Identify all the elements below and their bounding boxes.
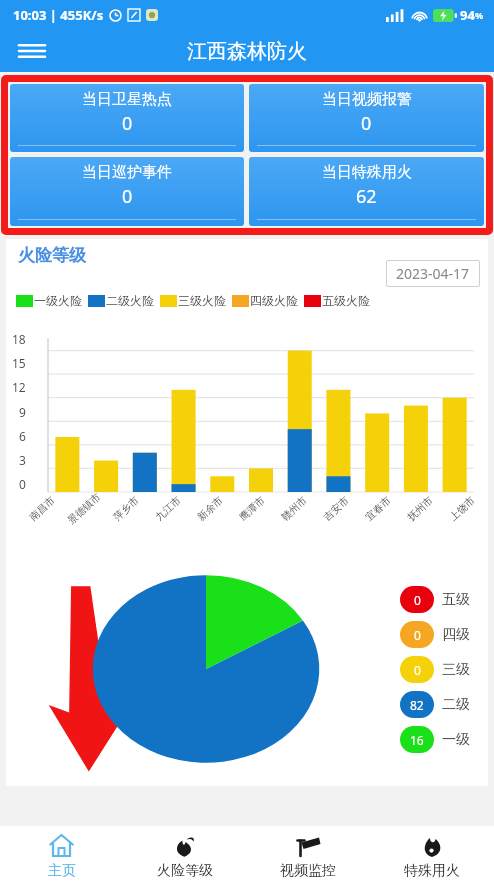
staticText: 0	[414, 662, 421, 678]
staticText: 0	[122, 111, 133, 136]
staticText: 18	[12, 331, 26, 347]
staticText: 0	[414, 592, 421, 608]
other: 火险等级	[172, 833, 197, 858]
staticText: 特殊用火	[404, 862, 460, 880]
staticText: 抚州市	[404, 494, 435, 523]
staticText: 15	[12, 355, 26, 371]
staticText: 0	[19, 476, 26, 492]
staticText: 一级	[442, 731, 470, 749]
staticText: 火险等级	[18, 245, 86, 266]
button[interactable]: 16	[400, 726, 470, 753]
button[interactable]: 当日视频报警	[249, 84, 484, 152]
staticText: 6	[19, 428, 26, 444]
staticText: 当日视频报警	[322, 90, 412, 109]
button[interactable]: 主页	[0, 826, 123, 884]
staticText: 10:03 | 455K/s	[13, 6, 104, 24]
button[interactable]: 当日特殊用火	[249, 157, 484, 226]
staticText: 二级火险	[106, 293, 154, 308]
button[interactable]: 视频监控	[246, 826, 370, 884]
staticText: 2023-04-17	[396, 264, 470, 283]
staticText: 16	[410, 732, 424, 748]
staticText: 景德镇市	[65, 490, 103, 527]
button[interactable]: Menu	[12, 31, 52, 71]
other: 特殊用火	[420, 833, 445, 858]
staticText: 萍乡市	[110, 494, 141, 523]
staticText: 上饶市	[446, 494, 477, 523]
staticText: 0	[414, 627, 421, 643]
button[interactable]: 82	[400, 691, 470, 718]
button[interactable]: 火险等级	[123, 826, 246, 884]
staticText: 62	[356, 184, 377, 209]
staticText: 四级	[442, 626, 470, 644]
staticText: 9	[19, 404, 26, 420]
staticText: 一级火险	[34, 293, 82, 308]
staticText: 火险等级	[157, 862, 213, 880]
staticText: 主页	[48, 862, 76, 880]
staticText: 赣州市	[278, 494, 309, 523]
button[interactable]: 特殊用火	[370, 826, 494, 884]
staticText: 宜春市	[362, 494, 393, 523]
staticText: 当日特殊用火	[322, 163, 412, 182]
staticText: 82	[410, 697, 424, 713]
staticText: 三级火险	[178, 293, 226, 308]
button[interactable]: 当日巡护事件	[10, 157, 244, 226]
staticText: 当日卫星热点	[82, 90, 172, 109]
staticText: 四级火险	[250, 293, 298, 308]
staticText: 当日巡护事件	[82, 163, 172, 182]
staticText: 0	[122, 184, 133, 209]
staticText: %	[475, 9, 484, 21]
staticText: 二级	[442, 696, 470, 714]
staticText: 九江市	[152, 494, 183, 523]
other: 视频监控	[296, 833, 321, 858]
staticText: 南昌市	[26, 494, 57, 523]
staticText: 3	[19, 452, 26, 468]
staticText: 吉安市	[320, 494, 351, 523]
staticText: 12	[12, 379, 26, 395]
staticText: 鹰潭市	[236, 494, 267, 523]
staticText: 视频监控	[280, 862, 336, 880]
button[interactable]: 2023-04-17	[396, 264, 470, 283]
staticText: 江西森林防火	[187, 39, 307, 64]
button[interactable]: 当日卫星热点	[10, 84, 244, 152]
staticText: 新余市	[194, 494, 225, 523]
button[interactable]: 0	[400, 586, 470, 613]
staticText: 三级	[442, 661, 470, 679]
staticText: 0	[361, 111, 372, 136]
button[interactable]: 0	[400, 621, 470, 648]
staticText: 五级火险	[322, 293, 370, 308]
staticText: 94	[460, 6, 475, 24]
button[interactable]: 0	[400, 656, 470, 683]
staticText: 五级	[442, 591, 470, 609]
